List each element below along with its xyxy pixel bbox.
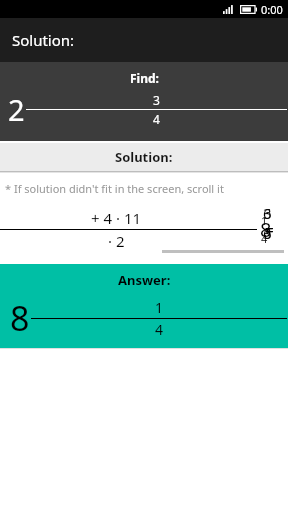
staticText: Answer: (118, 271, 171, 289)
staticText: 1 (155, 298, 164, 317)
staticText: Find: (130, 70, 159, 86)
staticText: 3 (153, 92, 160, 108)
staticText: 4 (153, 111, 160, 127)
button[interactable]: + 4 · 11 (0, 203, 288, 255)
staticText: 2 (8, 90, 25, 129)
button[interactable]: Solution: (0, 18, 288, 62)
staticText: 4 (155, 320, 164, 339)
staticText: 8 (10, 295, 30, 341)
staticText: 0:00 (261, 2, 283, 17)
staticText: * If solution didn't fit in the screen, … (5, 181, 224, 196)
staticText: · 2 (108, 231, 125, 251)
staticText: Solution: (12, 30, 75, 50)
staticText: Solution: (115, 148, 173, 166)
staticText: + 4 · 11 (91, 208, 142, 228)
button[interactable]: Answer: (0, 264, 288, 348)
other: Fraction solution screen (0, 0, 288, 512)
button[interactable]: Solution: (0, 143, 288, 171)
